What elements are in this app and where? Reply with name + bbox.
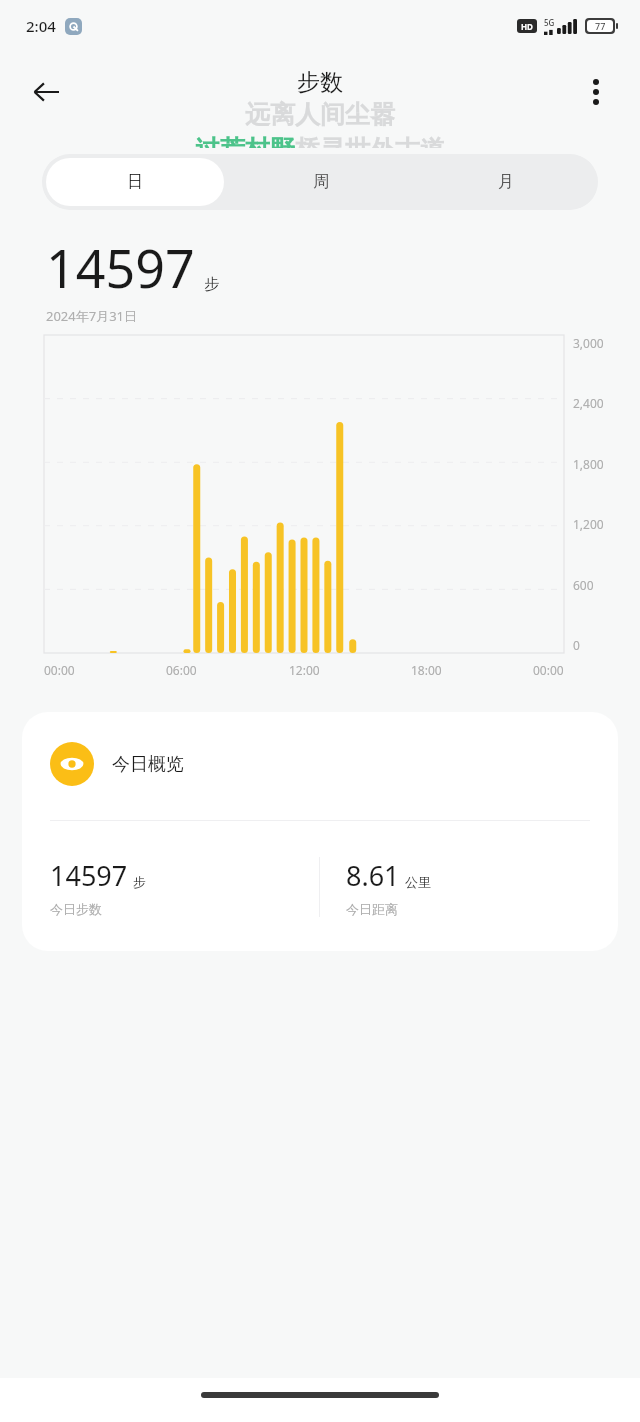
- button[interactable]: 日: [46, 158, 224, 206]
- staticText: 0: [573, 637, 580, 653]
- staticText: 日: [127, 172, 143, 192]
- staticText: 步: [133, 874, 146, 890]
- button[interactable]: 今日概览: [22, 712, 618, 951]
- staticText: 00:00: [44, 662, 75, 678]
- staticText: 桥寻世外古道: [295, 134, 445, 148]
- staticText: 77: [595, 20, 606, 32]
- staticText: 600: [573, 577, 594, 593]
- staticText: 2024年7月31日: [46, 307, 138, 325]
- button[interactable]: More options: [568, 64, 624, 120]
- staticText: 06:00: [166, 662, 197, 678]
- staticText: 步: [204, 275, 219, 294]
- staticText: 2:04: [26, 16, 56, 36]
- staticText: HD: [521, 21, 533, 32]
- staticText: 14597: [50, 857, 128, 894]
- staticText: 公里: [405, 874, 431, 890]
- staticText: 今日距离: [346, 901, 398, 917]
- button[interactable]: 周: [232, 158, 409, 206]
- staticText: 月: [498, 172, 514, 192]
- staticText: 2,400: [573, 395, 604, 411]
- staticText: 1,800: [573, 456, 604, 472]
- staticText: 3,000: [573, 335, 604, 351]
- staticText: 今日步数: [50, 901, 102, 917]
- staticText: 5G: [544, 17, 555, 28]
- staticText: 过荒村野: [195, 134, 295, 148]
- staticText: 14597: [46, 232, 195, 303]
- staticText: 远离人间尘嚣: [245, 99, 395, 130]
- staticText: 周: [313, 172, 329, 192]
- staticText: 00:00: [533, 662, 564, 678]
- button[interactable]: Back: [18, 64, 74, 120]
- staticText: 12:00: [289, 662, 320, 678]
- staticText: 今日概览: [112, 753, 184, 776]
- staticText: 1,200: [573, 516, 604, 532]
- staticText: 8.61: [346, 857, 400, 894]
- staticText: 18:00: [411, 662, 442, 678]
- button[interactable]: 月: [417, 158, 594, 206]
- staticText: 步数: [297, 68, 343, 97]
